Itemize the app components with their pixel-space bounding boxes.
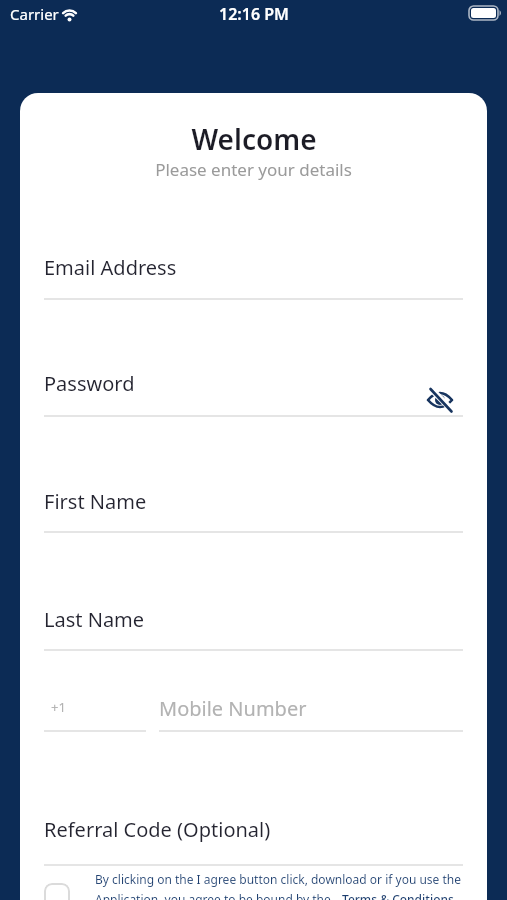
staticText: Terms & Conditions [342,891,454,900]
staticText: Referral Code (Optional) [44,816,271,843]
staticText: Please enter your details [155,158,352,181]
staticText: Last Name [44,606,145,633]
staticText: 12:16 PM [219,3,289,25]
button[interactable]: Password [44,361,463,417]
staticText: Welcome [191,120,317,158]
staticText: Carrier [10,4,59,24]
button[interactable]: Referral Code (Optional) [44,807,463,866]
button[interactable] [44,883,70,900]
button[interactable]: First Name [44,479,463,533]
staticText: By clicking on the I agree button click,… [95,871,461,887]
staticText: Mobile Number [159,695,307,722]
staticText: Email Address [44,254,177,281]
staticText: Application, you agree to be bound by th… [95,891,331,900]
staticText: First Name [44,488,147,515]
staticText: Password [44,370,135,397]
staticText: +1 [51,698,66,716]
button[interactable]: Last Name [44,597,463,651]
button[interactable] [423,383,457,417]
button[interactable]: Mobile Number [159,685,463,732]
button[interactable] [93,863,465,900]
button[interactable]: Email Address [44,245,463,300]
button[interactable]: +1 [44,685,146,732]
